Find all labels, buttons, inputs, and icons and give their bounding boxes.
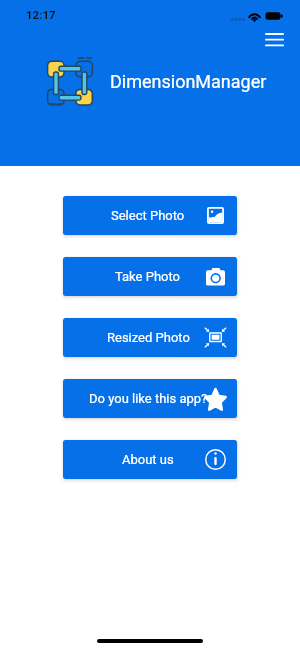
staticText: 12:17 [26, 8, 56, 21]
staticText: Resized Photo [107, 330, 190, 345]
staticText: Take Photo [115, 269, 181, 284]
button[interactable]: Take Photo [63, 257, 237, 296]
staticText: About us [122, 452, 174, 467]
button[interactable]: Menu [258, 27, 291, 53]
staticText: DimensionManager [110, 71, 267, 92]
button[interactable]: Do you like this app? [63, 379, 237, 418]
button[interactable]: Resized Photo [63, 318, 237, 357]
staticText: Do you like this app? [89, 391, 208, 406]
button[interactable]: Select Photo [63, 196, 237, 235]
button[interactable]: About us [63, 440, 237, 479]
staticText: Select Photo [111, 208, 185, 223]
